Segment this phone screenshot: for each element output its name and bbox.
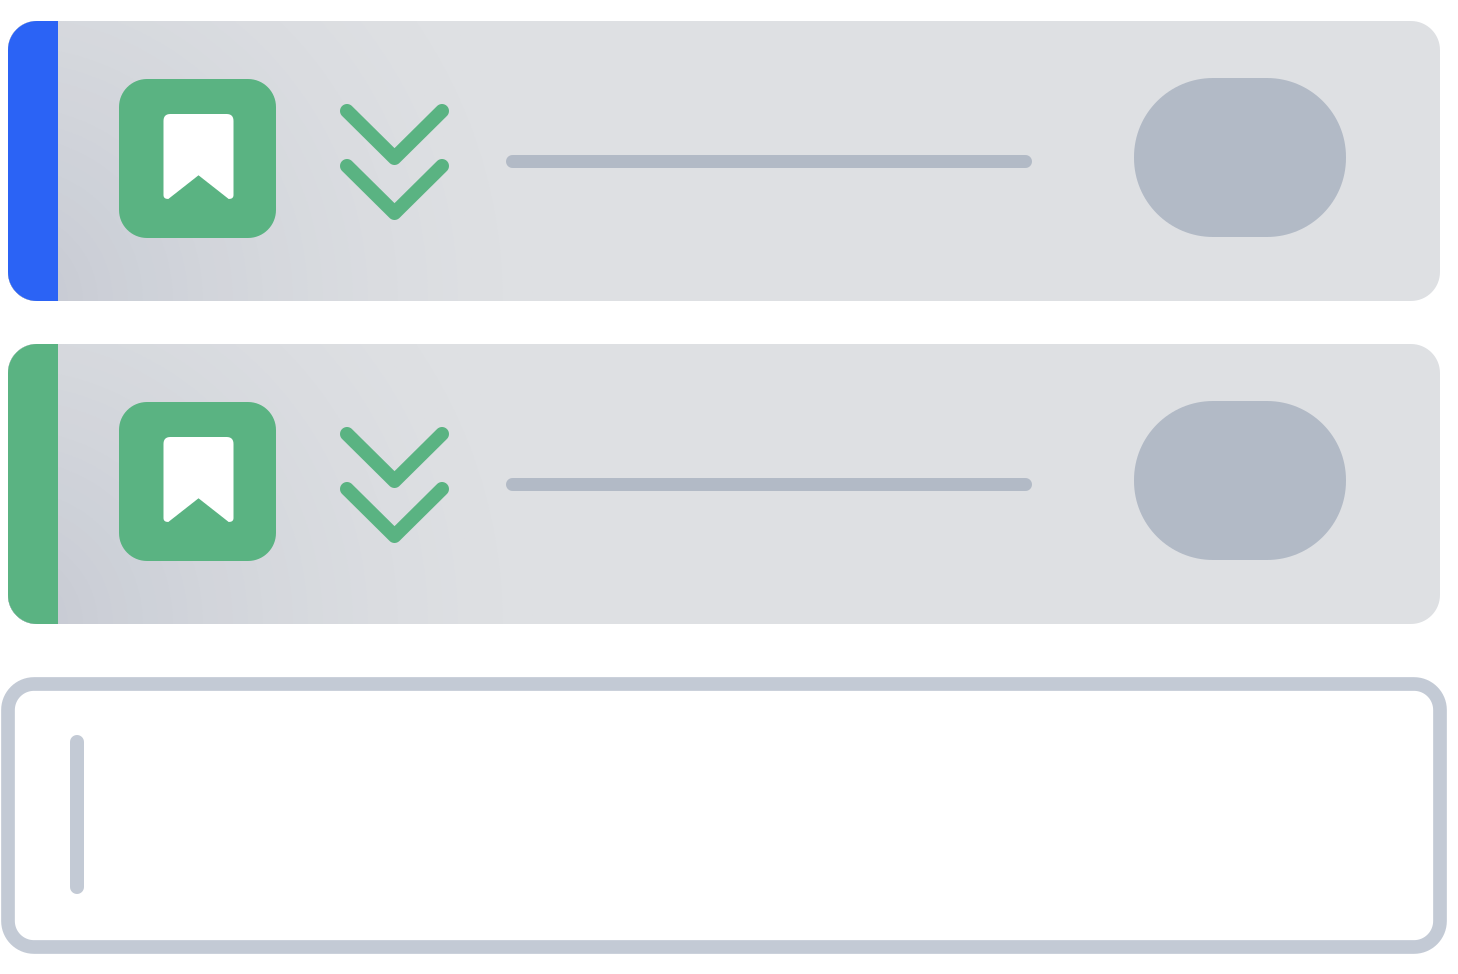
button[interactable] (8, 344, 1440, 624)
button[interactable] (8, 21, 1440, 301)
button[interactable] (8, 684, 1440, 947)
